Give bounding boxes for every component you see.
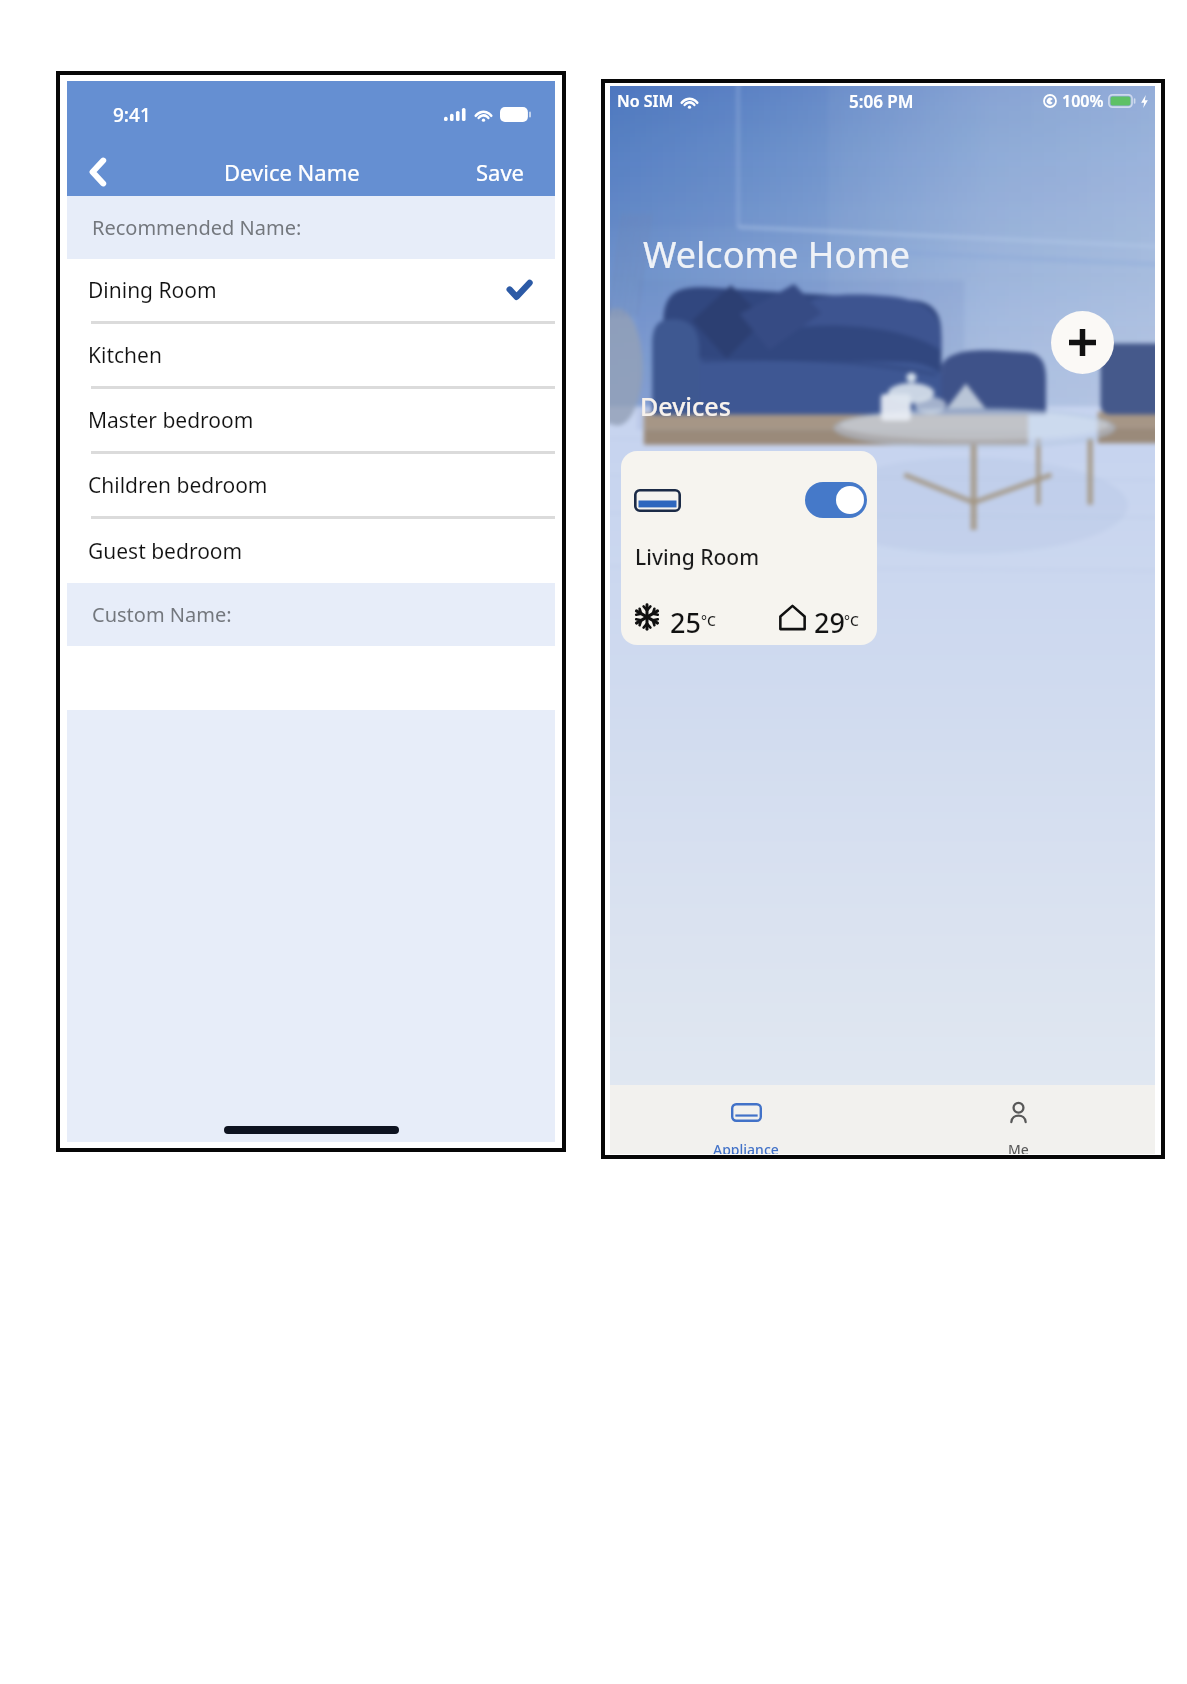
staticText: Recommended Name:: [92, 214, 302, 241]
staticText: Kitchen: [88, 341, 162, 370]
button[interactable]: Save: [458, 148, 543, 196]
staticText: Dining Room: [88, 276, 217, 305]
staticText: °C: [844, 611, 859, 630]
staticText: 25: [670, 604, 701, 641]
button[interactable]: Guest bedroom: [67, 519, 555, 583]
button[interactable]: Power toggle: [805, 482, 867, 518]
button[interactable]: Appliance: [610, 1085, 882, 1154]
staticText: Living Room: [635, 543, 760, 572]
button[interactable]: Dining Room: [67, 259, 555, 324]
staticText: No SIM: [617, 90, 674, 112]
staticText: Welcome Home: [643, 230, 911, 279]
staticText: °C: [701, 611, 716, 630]
staticText: Device Name: [224, 157, 360, 187]
staticText: 5:06 PM: [849, 90, 914, 113]
staticText: Guest bedroom: [88, 537, 243, 566]
staticText: 29: [814, 604, 845, 641]
staticText: Master bedroom: [88, 406, 254, 435]
button[interactable]: Add device: [1051, 311, 1114, 374]
button[interactable]: Master bedroom: [67, 389, 555, 454]
button[interactable]: Me: [882, 1085, 1155, 1154]
button[interactable]: Children bedroom: [67, 454, 555, 519]
staticText: 9:41: [113, 102, 151, 128]
staticText: Custom Name:: [92, 601, 232, 628]
button[interactable]: Kitchen: [67, 324, 555, 389]
button[interactable]: Power toggle: [621, 451, 877, 645]
staticText: Appliance: [713, 1140, 779, 1154]
button[interactable]: Back: [67, 148, 127, 196]
staticText: Devices: [640, 389, 731, 423]
staticText: Me: [1008, 1140, 1029, 1154]
staticText: 100%: [1062, 90, 1104, 112]
staticText: Save: [476, 157, 525, 187]
staticText: Children bedroom: [88, 471, 268, 500]
